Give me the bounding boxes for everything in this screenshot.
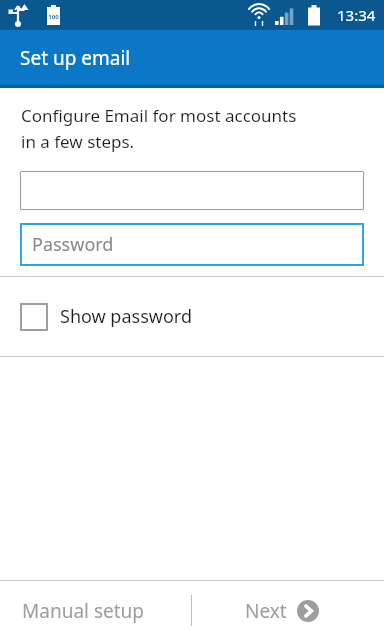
button[interactable] bbox=[20, 171, 364, 210]
staticText: Configure Email for most accounts in a f… bbox=[21, 104, 297, 153]
staticText: 100 bbox=[47, 13, 60, 21]
button[interactable]: Next bbox=[192, 581, 384, 640]
staticText: Set up email bbox=[20, 45, 131, 71]
staticText: Next bbox=[245, 598, 287, 624]
button[interactable]: Password bbox=[20, 223, 364, 266]
button[interactable]: Manual setup bbox=[0, 581, 191, 640]
staticText: Manual setup bbox=[22, 598, 144, 624]
staticText: Password bbox=[32, 232, 114, 257]
button[interactable]: Show password bbox=[0, 277, 384, 356]
staticText: 13:34 bbox=[337, 5, 376, 25]
staticText: Show password bbox=[60, 304, 192, 329]
